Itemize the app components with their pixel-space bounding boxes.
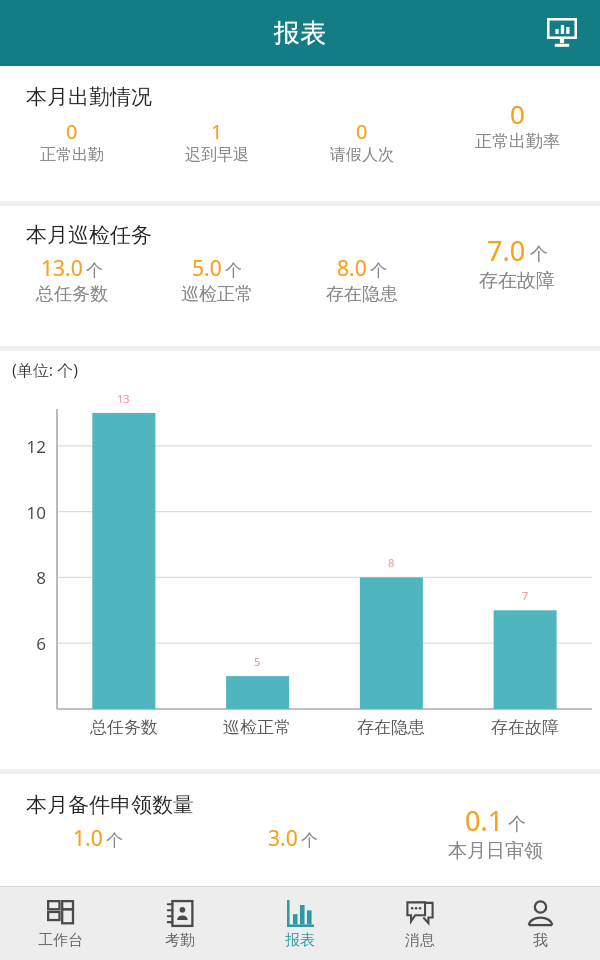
staticText: 总任务数 <box>36 283 108 306</box>
staticText: 个 <box>106 830 123 851</box>
staticText: 13.0 <box>41 254 83 283</box>
staticText: 5.0 <box>192 254 222 283</box>
staticText: 请假人次 <box>330 145 394 165</box>
staticText: 我 <box>533 931 548 950</box>
staticText: 3.0 <box>268 824 298 853</box>
staticText: 存在故障 <box>491 717 559 738</box>
staticText: 个 <box>530 243 548 266</box>
staticText: 工作台 <box>38 931 83 950</box>
staticText: 报表 <box>285 931 315 950</box>
staticText: 6 <box>0 632 46 655</box>
staticText: 巡检正常 <box>223 717 291 738</box>
staticText: 7 <box>522 588 529 603</box>
staticText: 总任务数 <box>90 717 158 738</box>
staticText: 消息 <box>405 931 435 950</box>
staticText: 个 <box>225 260 242 281</box>
staticText: 本月日审领 <box>448 839 543 863</box>
button[interactable]: 本月备件申领数量 <box>0 774 600 886</box>
button[interactable]: 消息 <box>360 887 480 960</box>
staticText: 7.0 <box>487 232 526 269</box>
button[interactable]: 工作台 <box>0 887 120 960</box>
button[interactable]: 报表 <box>240 887 360 960</box>
staticText: 考勤 <box>165 931 195 950</box>
staticText: 个 <box>370 260 387 281</box>
staticText: 8 <box>388 555 395 570</box>
staticText: 12 <box>0 435 46 458</box>
staticText: 1 <box>211 118 223 145</box>
staticText: 0 <box>510 96 525 131</box>
button[interactable]: 考勤 <box>120 887 240 960</box>
staticText: 本月备件申领数量 <box>26 792 194 818</box>
staticText: 0 <box>66 118 78 145</box>
staticText: 0 <box>356 118 368 145</box>
staticText: (单位: 个) <box>12 359 79 381</box>
staticText: 存在隐患 <box>326 283 398 306</box>
staticText: 8.0 <box>337 254 367 283</box>
staticText: 5 <box>254 654 261 669</box>
staticText: 报表 <box>274 17 326 50</box>
staticText: 存在隐患 <box>357 717 425 738</box>
staticText: 正常出勤率 <box>475 131 560 152</box>
staticText: 本月出勤情况 <box>26 84 152 110</box>
staticText: 10 <box>0 501 46 524</box>
staticText: 个 <box>86 260 103 281</box>
button[interactable]: 我 <box>480 887 600 960</box>
staticText: 存在故障 <box>479 269 555 293</box>
button[interactable]: 本月巡检任务 <box>0 206 600 346</box>
staticText: 巡检正常 <box>181 283 253 306</box>
staticText: 个 <box>508 813 526 836</box>
staticText: 1.0 <box>73 824 103 853</box>
staticText: 正常出勤 <box>40 145 104 165</box>
staticText: 个 <box>301 830 318 851</box>
staticText: 迟到早退 <box>185 145 249 165</box>
button[interactable]: 本月出勤情况 <box>0 66 600 201</box>
button[interactable]: Report chart <box>540 11 584 55</box>
staticText: 0.1 <box>465 802 504 839</box>
staticText: 8 <box>0 566 46 589</box>
staticText: 本月巡检任务 <box>26 222 152 248</box>
staticText: 13 <box>117 391 130 406</box>
